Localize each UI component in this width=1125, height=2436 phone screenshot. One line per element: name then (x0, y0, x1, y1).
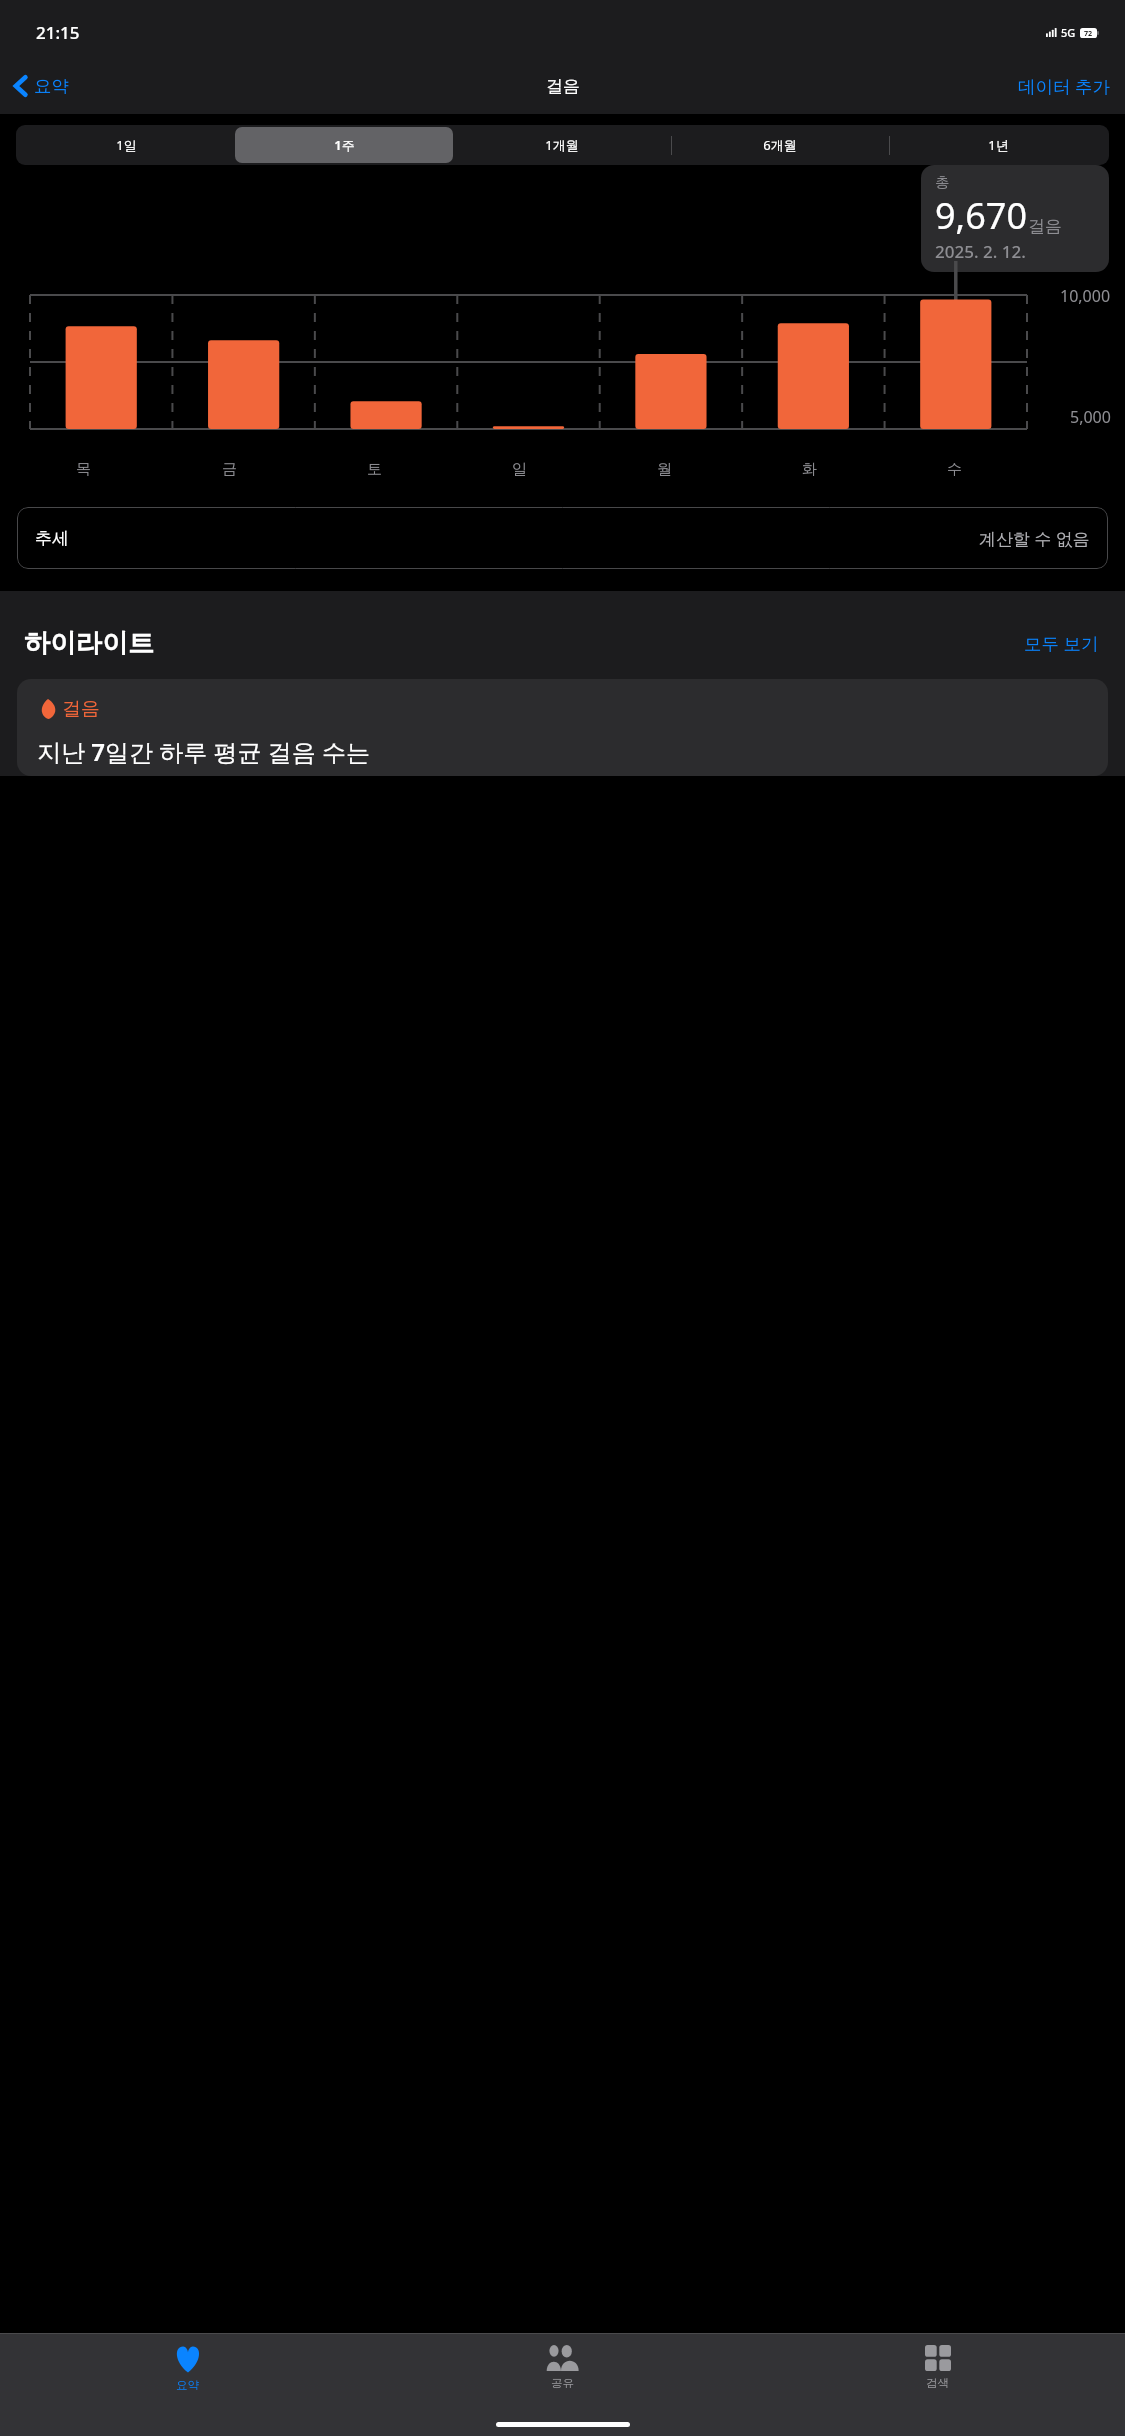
staticText: 72 (1084, 28, 1093, 38)
staticText: 추세 (35, 528, 69, 549)
staticText: 목 (76, 460, 91, 479)
staticText: 요약 (176, 2378, 199, 2392)
staticText: 계산할 수 없음 (979, 527, 1090, 550)
staticText: 9,670 (935, 191, 1028, 240)
staticText: 금 (222, 460, 237, 479)
staticText: 걸음 (62, 697, 100, 721)
button[interactable]: 1일 (18, 127, 235, 163)
button[interactable]: 데이터 추가 (1004, 68, 1125, 104)
staticText: 5,000 (1070, 406, 1111, 428)
staticText: 공유 (551, 2376, 574, 2390)
staticText: 요약 (34, 75, 69, 97)
button[interactable]: 1년 (889, 127, 1107, 163)
staticText: 6개월 (763, 136, 797, 154)
button[interactable]: 공유 (375, 2343, 750, 2392)
button[interactable]: 1개월 (453, 127, 671, 163)
button[interactable]: 1주 (235, 127, 453, 163)
button[interactable]: 요약 (0, 2343, 375, 2394)
staticText: 하이라이트 (24, 627, 154, 660)
staticText: 토 (367, 460, 382, 479)
staticText: 21:15 (36, 21, 80, 44)
button[interactable]: 추세 (17, 507, 1108, 569)
staticText: 걸음 (1028, 216, 1062, 237)
staticText: 총 (935, 173, 950, 191)
staticText: 5G (1061, 25, 1076, 40)
button[interactable]: 검색 (750, 2343, 1125, 2392)
staticText: 검색 (926, 2376, 949, 2390)
staticText: 1일 (116, 136, 137, 154)
staticText: 10,000 (1060, 285, 1111, 307)
staticText: 일 (512, 460, 527, 479)
staticText: 지난 7일간 하루 평균 걸음 수는 (37, 735, 370, 768)
button[interactable]: 요약 (0, 69, 79, 103)
staticText: 모두 보기 (1024, 631, 1099, 655)
staticText: 수 (947, 460, 962, 479)
staticText: 1주 (334, 136, 355, 154)
staticText: 1개월 (545, 136, 579, 154)
staticText: 2025. 2. 12. (935, 240, 1026, 263)
button[interactable]: 6개월 (671, 127, 889, 163)
staticText: 월 (657, 460, 672, 479)
staticText: 1년 (988, 136, 1009, 154)
staticText: 화 (802, 460, 817, 479)
staticText: 걸음 (546, 76, 580, 97)
button[interactable]: 걸음 (17, 679, 1108, 776)
staticText: 데이터 추가 (1018, 74, 1111, 98)
button[interactable]: 모두 보기 (1018, 625, 1105, 661)
